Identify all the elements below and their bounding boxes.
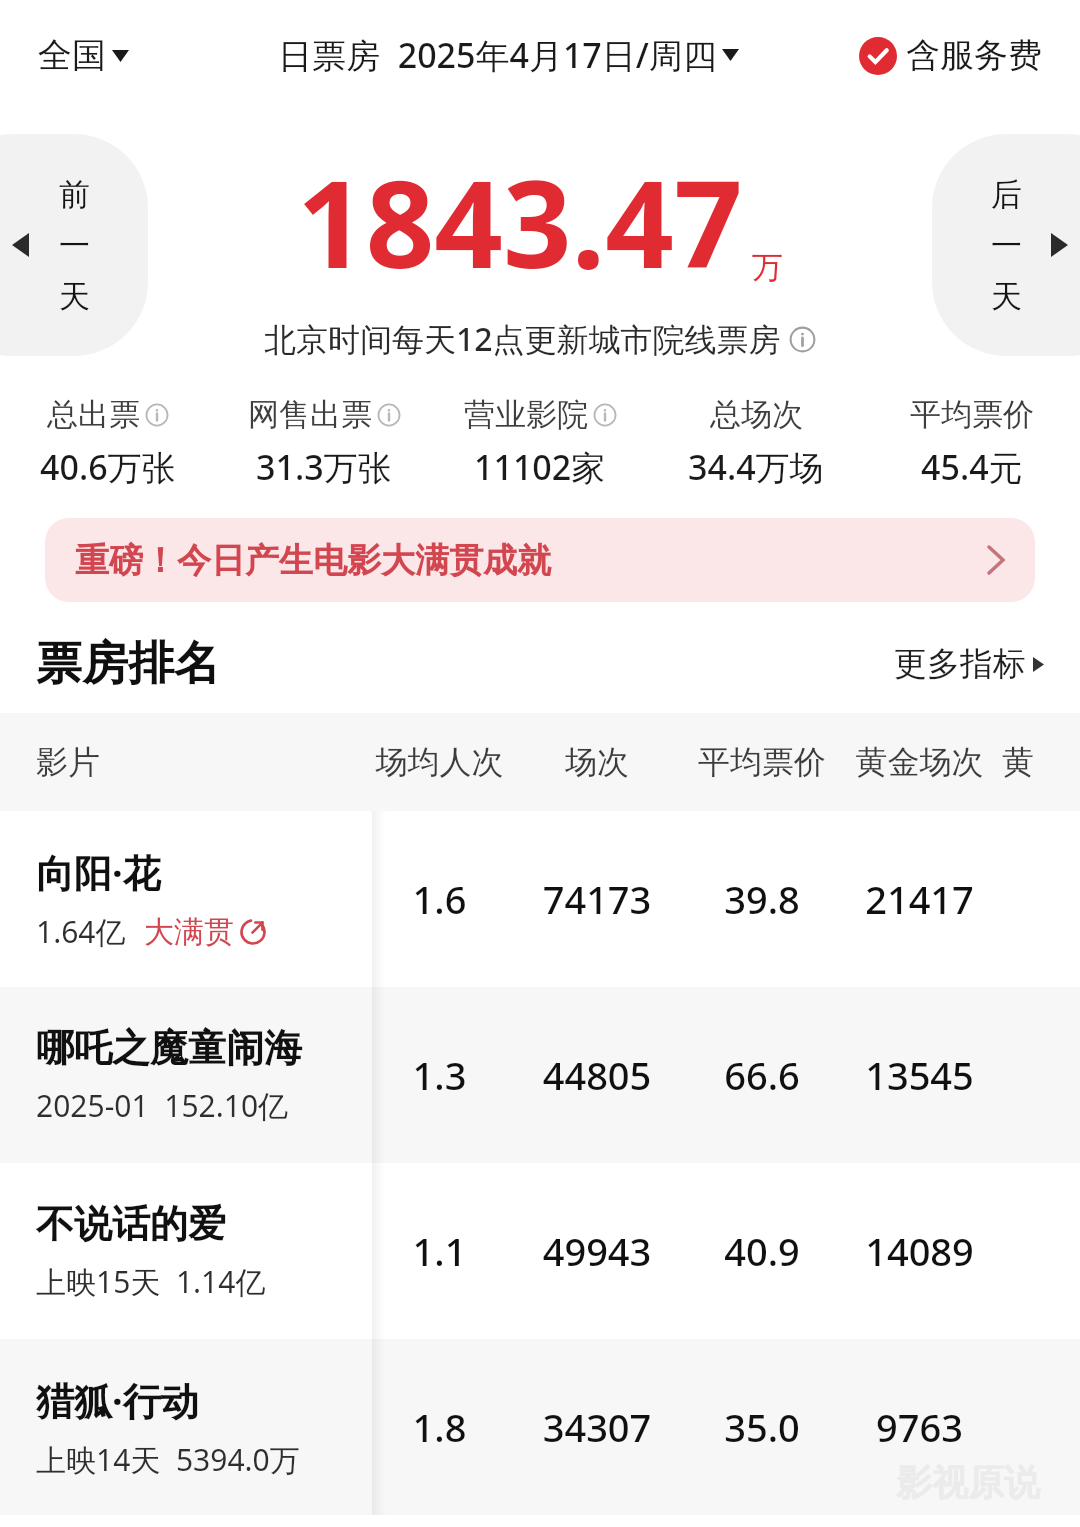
button[interactable]: 网售出票 <box>216 380 432 505</box>
button[interactable]: 总场次 <box>648 380 864 505</box>
staticText: 总出票 <box>47 395 140 434</box>
staticText: 11102家 <box>474 444 606 490</box>
staticText: 票房排名 <box>36 635 220 693</box>
button[interactable]: 含服务费 <box>859 34 1042 77</box>
staticText: 黄 <box>1002 742 1034 782</box>
button[interactable]: 不说话的爱 <box>0 1163 1080 1339</box>
staticText: 场均人次 <box>372 742 507 782</box>
button[interactable]: 更多指标 <box>894 643 1044 685</box>
staticText: 场次 <box>507 742 687 782</box>
button[interactable]: 哪吒之魔童闹海 <box>0 987 1080 1163</box>
staticText: 9763 <box>837 1401 1002 1453</box>
staticText: 一 <box>59 226 90 265</box>
staticText: 34.4万场 <box>688 444 824 490</box>
staticText: 66.6 <box>687 1049 837 1101</box>
staticText: 上映14天 5394.0万 <box>36 1439 300 1480</box>
staticText: 总场次 <box>710 395 803 434</box>
staticText: 39.8 <box>687 873 837 925</box>
staticText: 影视原说 <box>896 1460 1040 1505</box>
staticText: 2025-01 152.10亿 <box>36 1085 289 1126</box>
button[interactable]: 日票房 2025年4月17日/周四 <box>278 32 739 78</box>
staticText: 31.3万张 <box>256 444 392 490</box>
staticText: 一 <box>991 226 1022 265</box>
button[interactable]: 总出票 <box>0 380 216 505</box>
button[interactable]: 全国 <box>38 34 129 77</box>
staticText: 40.6万张 <box>40 444 176 490</box>
staticText: 1843.47 <box>297 140 743 303</box>
staticText: 平均票价 <box>687 742 837 782</box>
staticText: 天 <box>991 277 1022 316</box>
staticText: 21417 <box>837 873 1002 925</box>
button[interactable]: 营业影院 <box>432 380 648 505</box>
staticText: 34307 <box>507 1401 687 1453</box>
staticText: 44805 <box>507 1049 687 1101</box>
staticText: 1.64亿 <box>36 911 126 952</box>
staticText: 日票房 2025年4月17日/周四 <box>278 32 717 78</box>
staticText: 万 <box>752 248 783 287</box>
staticText: 1.3 <box>372 1049 507 1101</box>
staticText: 49943 <box>507 1225 687 1277</box>
staticText: 前 <box>59 175 90 214</box>
staticText: 猎狐·行动 <box>36 1374 199 1426</box>
staticText: 不说话的爱 <box>36 1200 226 1248</box>
staticText: 营业影院 <box>464 395 588 434</box>
staticText: 上映15天 1.14亿 <box>36 1261 266 1302</box>
staticText: 黄金场次 <box>837 742 1002 782</box>
button[interactable]: 向阳·花 <box>0 811 1080 987</box>
staticText: 网售出票 <box>248 395 372 434</box>
button[interactable]: 猎狐·行动 <box>0 1339 1080 1515</box>
staticText: 哪吒之魔童闹海 <box>36 1024 302 1072</box>
staticText: 更多指标 <box>894 643 1026 685</box>
staticText: 1.6 <box>372 873 507 925</box>
staticText: 全国 <box>38 34 106 77</box>
staticText: 重磅！今日产生电影大满贯成就 <box>75 539 551 582</box>
staticText: 平均票价 <box>910 395 1034 434</box>
staticText: 74173 <box>507 873 687 925</box>
staticText: 1.8 <box>372 1401 507 1453</box>
staticText: 45.4元 <box>921 444 1023 490</box>
button[interactable]: 重磅！今日产生电影大满贯成就 <box>45 518 1035 602</box>
staticText: 向阳·花 <box>36 846 161 898</box>
staticText: 40.9 <box>687 1225 837 1277</box>
staticText: 影片 <box>36 742 100 782</box>
staticText: 13545 <box>837 1049 1002 1101</box>
button[interactable]: 前一天 <box>0 134 148 356</box>
button[interactable]: 平均票价 <box>864 380 1080 505</box>
staticText: 后 <box>991 175 1022 214</box>
staticText: 35.0 <box>687 1401 837 1453</box>
staticText: 大满贯 <box>144 913 234 951</box>
button[interactable]: 后一天 <box>932 134 1080 356</box>
staticText: 含服务费 <box>906 34 1042 77</box>
staticText: 天 <box>59 277 90 316</box>
staticText: 14089 <box>837 1225 1002 1277</box>
staticText: 1.1 <box>372 1225 507 1277</box>
staticText: 北京时间每天12点更新城市院线票房 <box>264 317 781 361</box>
